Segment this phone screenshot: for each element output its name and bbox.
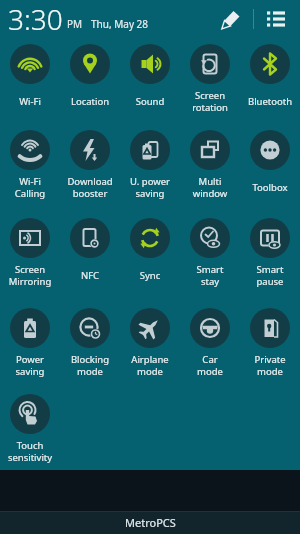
button[interactable]: Blocking mode [60, 308, 120, 378]
button[interactable]: Toolbox [240, 130, 300, 200]
button[interactable]: Sync [120, 218, 180, 288]
button[interactable]: Screen rotation [180, 44, 240, 114]
staticText: Multi window [180, 175, 240, 200]
staticText: Smart pause [240, 263, 300, 288]
staticText: Power saving [0, 353, 60, 378]
staticText: Download booster [60, 175, 120, 200]
staticText: Blocking mode [60, 353, 120, 378]
staticText: Car mode [180, 353, 240, 378]
button[interactable]: Wi-Fi [0, 44, 60, 114]
staticText: Location [60, 95, 120, 108]
staticText: Screen rotation [180, 89, 240, 114]
button[interactable]: Car mode [180, 308, 240, 378]
button[interactable]: Screen Mirroring [0, 218, 60, 288]
button[interactable]: Smart stay [180, 218, 240, 288]
staticText: Screen Mirroring [0, 263, 60, 288]
staticText: Smart stay [180, 263, 240, 288]
staticText: Sync [120, 269, 180, 282]
staticText: NFC [60, 269, 120, 282]
button[interactable]: Location [60, 44, 120, 114]
button[interactable]: Smart pause [240, 218, 300, 288]
button[interactable]: Airplane mode [120, 308, 180, 378]
staticText: Bluetooth [240, 95, 300, 108]
staticText: Private mode [240, 353, 300, 378]
button[interactable]: Wi-Fi Calling [0, 130, 60, 200]
staticText: MetroPCS [125, 515, 176, 530]
button[interactable]: Touch sensitivity [0, 394, 60, 464]
staticText: 3:30 [8, 0, 63, 38]
staticText: Wi-Fi [0, 95, 60, 108]
button[interactable]: MetroPCS [0, 511, 300, 534]
button[interactable]: U. power saving [120, 130, 180, 200]
button[interactable]: Bluetooth [240, 44, 300, 114]
staticText: Toolbox [240, 181, 300, 194]
staticText: Wi-Fi Calling [0, 175, 60, 200]
staticText: Sound [120, 95, 180, 108]
staticText: Airplane mode [120, 353, 180, 378]
button[interactable]: Download booster [60, 130, 120, 200]
button[interactable]: Sound [120, 44, 180, 114]
button[interactable] [217, 4, 247, 34]
button[interactable]: NFC [60, 218, 120, 288]
button[interactable]: Power saving [0, 308, 60, 378]
staticText: PM [67, 17, 83, 31]
staticText: U. power saving [120, 175, 180, 200]
button[interactable] [262, 5, 290, 33]
staticText: Touch sensitivity [0, 439, 60, 464]
staticText: Thu, May 28 [91, 17, 149, 31]
button[interactable]: Multi window [180, 130, 240, 200]
button[interactable]: Private mode [240, 308, 300, 378]
